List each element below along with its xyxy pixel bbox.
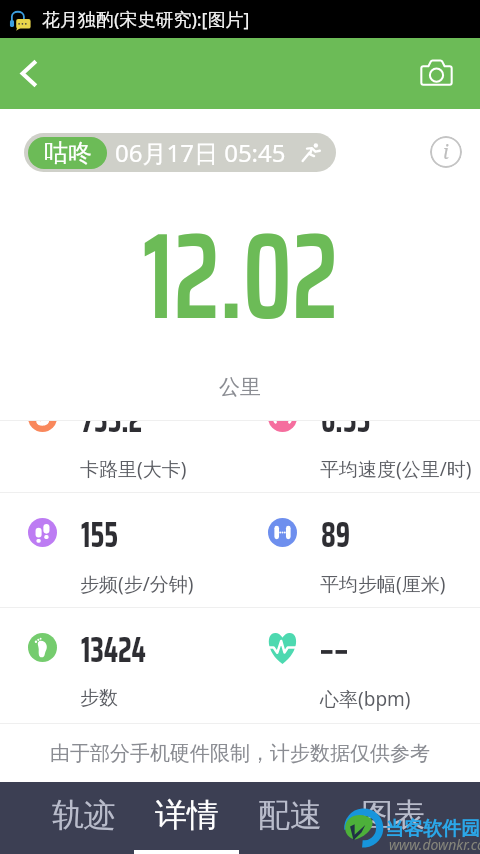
button[interactable]: Back [0, 38, 58, 109]
staticText: i [443, 139, 449, 165]
staticText: 轨迹 [52, 795, 116, 835]
staticText: 详情 [155, 795, 219, 835]
button[interactable]: Camera [392, 38, 480, 109]
button[interactable]: 图表 [340, 782, 445, 854]
staticText: 755.2 [81, 421, 142, 448]
staticText: 6.55 [321, 421, 370, 448]
staticText: 13424 [81, 620, 146, 678]
staticText: 卡路里(大卡) [80, 456, 187, 482]
staticText: 图表 [361, 795, 425, 835]
staticText: 89 [321, 505, 350, 563]
staticText: 155 [81, 505, 118, 563]
staticText: 心率(bpm) [320, 686, 411, 712]
staticText: 公里 [219, 374, 261, 400]
staticText: 12.02 [143, 180, 338, 370]
staticText: 步数 [80, 686, 118, 710]
button[interactable]: Info [430, 136, 462, 168]
staticText: 当客软件园 [385, 817, 480, 841]
staticText: 步频(步/分钟) [80, 571, 194, 597]
staticText: 平均速度(公里/时) [320, 456, 472, 482]
button[interactable]: 配速 [237, 782, 342, 854]
staticText: 06月17日 05:45 [115, 136, 286, 169]
staticText: www.downkr.com [389, 835, 480, 854]
staticText: 咕咚 [44, 138, 92, 168]
staticText: 花月独酌(宋史研究):[图片] [42, 7, 250, 32]
button[interactable]: 详情 [134, 782, 239, 854]
button[interactable]: 轨迹 [31, 782, 136, 854]
staticText: 由于部分手机硬件限制，计步数据仅供参考 [50, 741, 430, 766]
staticText: 平均步幅(厘米) [320, 571, 446, 597]
staticText: 配速 [258, 795, 322, 835]
button[interactable]: 咕咚 [24, 133, 336, 172]
